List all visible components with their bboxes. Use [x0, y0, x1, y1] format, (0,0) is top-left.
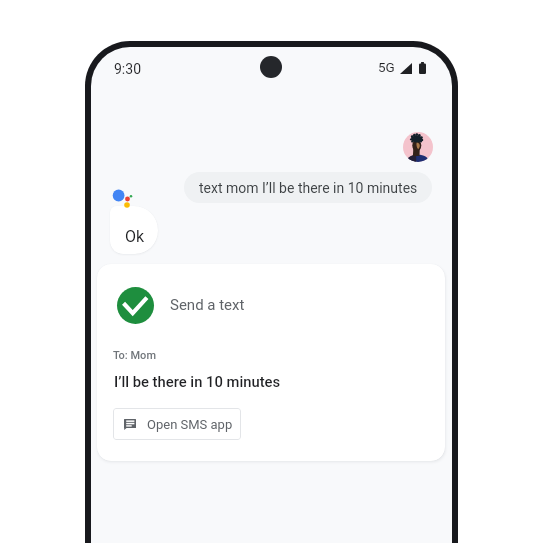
- staticText: 9:30: [114, 61, 141, 77]
- staticText: 5G: [378, 59, 395, 75]
- button[interactable]: Send a text: [97, 264, 445, 461]
- other: Google Assistant: [110, 187, 134, 211]
- button[interactable]: Ok: [110, 206, 158, 254]
- staticText: Open SMS app: [147, 417, 233, 432]
- staticText: To: Mom: [113, 349, 156, 362]
- button[interactable]: Open SMS app: [113, 408, 241, 440]
- button[interactable]: Profile: [403, 132, 433, 162]
- staticText: I’ll be there in 10 minutes: [114, 373, 281, 390]
- staticText: Send a text: [170, 296, 245, 314]
- staticText: text mom I’ll be there in 10 minutes: [199, 180, 418, 196]
- staticText: Ok: [125, 227, 145, 246]
- button[interactable]: text mom I’ll be there in 10 minutes: [184, 172, 432, 203]
